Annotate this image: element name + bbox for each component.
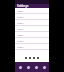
button[interactable]: Label (15, 44, 49, 50)
button[interactable]: Label (15, 32, 49, 38)
button[interactable]: Label (15, 20, 49, 26)
staticText: Label (17, 15, 24, 18)
button[interactable]: Tab (17, 64, 23, 70)
staticText: Label (17, 45, 24, 48)
staticText: Settings (17, 4, 29, 8)
staticText: Label (17, 33, 24, 36)
button[interactable]: Label (15, 26, 49, 32)
staticText: Label (17, 27, 24, 30)
staticText: Label (17, 21, 24, 24)
button[interactable]: Tab (41, 64, 47, 70)
button[interactable]: Label (15, 14, 49, 20)
staticText: Label (17, 9, 24, 12)
staticText: Label (17, 39, 24, 42)
button[interactable]: Label (15, 8, 49, 14)
button[interactable]: Label (15, 38, 49, 44)
button[interactable]: Tab (25, 64, 31, 70)
button[interactable]: Tab (33, 64, 39, 70)
